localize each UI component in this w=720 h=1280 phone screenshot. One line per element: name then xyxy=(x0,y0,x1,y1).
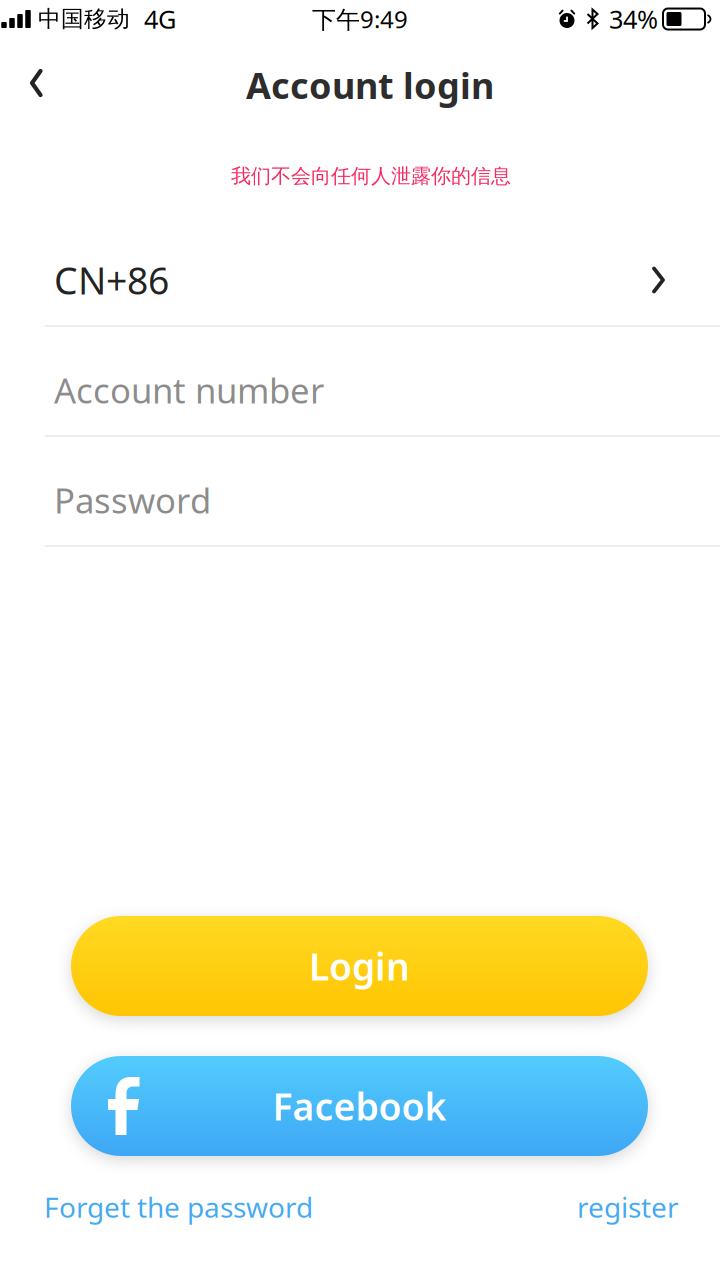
staticText: 下午9:49 xyxy=(312,3,408,35)
staticText: Password xyxy=(54,477,211,523)
staticText: 4G xyxy=(144,2,176,36)
staticText: Login xyxy=(309,941,410,991)
button[interactable]: Facebook xyxy=(71,1056,648,1156)
button[interactable]: Account number xyxy=(0,327,720,437)
button[interactable]: Login xyxy=(71,916,648,1016)
staticText: Forget the password xyxy=(44,1188,313,1226)
staticText: 34% xyxy=(609,2,658,36)
staticText: CN+86 xyxy=(54,255,169,305)
button[interactable]: Forget the password xyxy=(44,1189,313,1225)
staticText: 中国移动 xyxy=(38,5,130,33)
button[interactable]: Back xyxy=(7,53,65,113)
staticText: Account number xyxy=(54,367,324,413)
button[interactable]: Password xyxy=(0,437,720,547)
button[interactable]: register xyxy=(577,1189,679,1225)
staticText: Account login xyxy=(246,61,494,109)
button[interactable]: CN+86 xyxy=(0,217,720,327)
staticText: 我们不会向任何人泄露你的信息 xyxy=(231,164,511,188)
staticText: register xyxy=(577,1188,679,1226)
staticText: Facebook xyxy=(272,1081,446,1131)
